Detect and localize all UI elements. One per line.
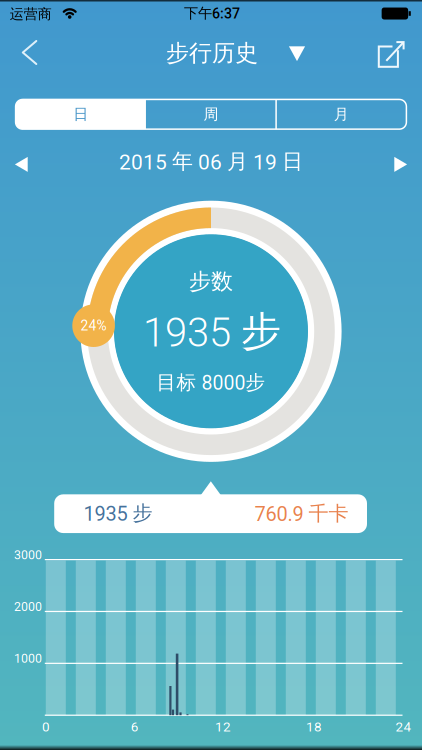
staticText: 24% (81, 318, 107, 334)
staticText: 步行历史 (166, 38, 258, 67)
button[interactable]: 步行历史 (140, 33, 312, 72)
button[interactable]: Previous day (4, 152, 38, 176)
staticText: 760.9 千卡 (254, 501, 348, 526)
staticText: 1000 (14, 651, 42, 666)
button[interactable]: Next day (384, 152, 418, 176)
staticText: 3000 (14, 548, 42, 562)
staticText: 月 (334, 105, 349, 124)
staticText: 0 (42, 719, 50, 735)
staticText: 运营商 (10, 5, 52, 23)
staticText: 12 (215, 719, 231, 735)
staticText: 6 (131, 719, 139, 735)
button[interactable]: 日 (16, 99, 146, 129)
staticText: 步数 (189, 268, 233, 295)
staticText: 周 (203, 105, 218, 124)
staticText: 1935 步 (143, 306, 281, 357)
button[interactable]: 周 (146, 99, 276, 129)
staticText: 24 (395, 719, 411, 735)
button[interactable]: 月 (276, 99, 406, 129)
staticText: 18 (306, 719, 322, 735)
staticText: 1935 步 (83, 501, 152, 526)
staticText: 目标 8000步 (156, 370, 265, 395)
button[interactable]: Back (20, 33, 60, 72)
staticText: 2015 年 06 月 19 日 (119, 148, 303, 175)
staticText: 下午6:37 (184, 4, 240, 22)
staticText: 日 (73, 105, 88, 124)
button[interactable]: Share (370, 35, 412, 75)
staticText: 2000 (14, 599, 42, 614)
